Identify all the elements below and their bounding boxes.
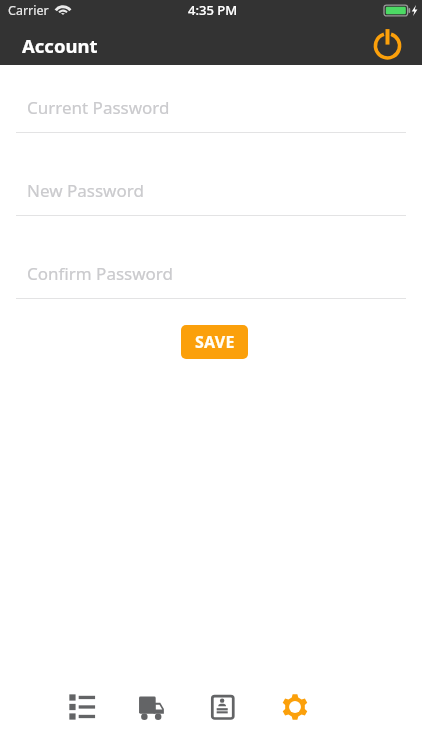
staticText: Confirm Password xyxy=(27,262,173,285)
button[interactable]: New Password xyxy=(0,179,422,216)
button[interactable]: Settings xyxy=(257,680,328,750)
button[interactable]: Deliveries xyxy=(115,680,186,750)
button[interactable]: Confirm Password xyxy=(0,262,422,299)
staticText: SAVE xyxy=(195,331,235,353)
staticText: 4:35 PM xyxy=(188,1,238,19)
staticText: Account xyxy=(22,33,98,58)
button[interactable]: Contacts xyxy=(186,680,257,750)
staticText: Current Password xyxy=(27,96,170,119)
staticText: Carrier xyxy=(8,2,49,19)
staticText: New Password xyxy=(27,179,144,202)
button[interactable]: SAVE xyxy=(181,325,248,359)
button[interactable]: Current Password xyxy=(0,96,422,133)
button[interactable]: List xyxy=(44,680,115,750)
button[interactable]: Log out xyxy=(367,23,407,63)
